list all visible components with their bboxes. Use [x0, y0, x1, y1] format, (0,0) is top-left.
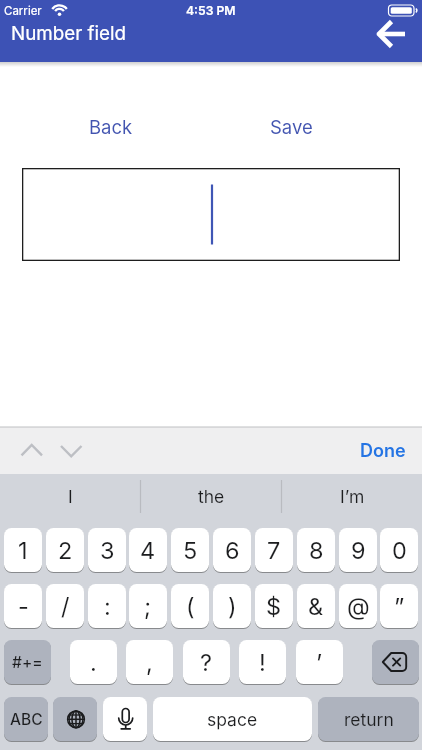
staticText: ABC [10, 710, 43, 729]
button[interactable]: I’m [282, 474, 422, 519]
staticText: #+= [12, 653, 43, 672]
button[interactable]: 4 [129, 528, 167, 572]
staticText: Back [89, 116, 133, 138]
staticText: 4 [140, 536, 156, 564]
staticText: . [90, 648, 97, 676]
button[interactable]: ? [183, 640, 230, 684]
staticText: ! [259, 648, 266, 676]
staticText: Number field [11, 22, 127, 45]
staticText: 8 [309, 536, 324, 564]
staticText: the [198, 486, 225, 507]
button[interactable]: ( [171, 584, 209, 628]
staticText: ) [228, 592, 237, 620]
button[interactable]: ABC [4, 697, 48, 741]
button[interactable] [22, 168, 400, 261]
button[interactable]: / [46, 584, 84, 628]
button[interactable]: @ [339, 584, 377, 628]
button[interactable]: 8 [297, 528, 335, 572]
button[interactable]: Done [352, 432, 414, 469]
staticText: 4:53 PM [186, 3, 236, 18]
button[interactable]: 6 [213, 528, 251, 572]
button[interactable] [368, 12, 416, 56]
button[interactable]: I [0, 474, 140, 519]
staticText: 0 [392, 536, 407, 564]
button[interactable]: 1 [4, 528, 42, 572]
button[interactable]: ; [129, 584, 167, 628]
button[interactable] [53, 697, 97, 741]
button[interactable]: Back [60, 108, 162, 146]
staticText: 7 [267, 536, 281, 564]
staticText: 2 [58, 536, 73, 564]
staticText: 3 [100, 536, 115, 564]
staticText: space [207, 709, 258, 730]
staticText: @ [347, 592, 370, 620]
staticText: , [146, 648, 153, 676]
button[interactable] [372, 640, 419, 684]
staticText: ” [394, 592, 405, 620]
staticText: / [61, 592, 70, 620]
button[interactable]: space [153, 697, 312, 741]
button[interactable]: & [297, 584, 335, 628]
button[interactable]: #+= [4, 640, 51, 684]
staticText: ? [200, 648, 213, 676]
staticText: I’m [340, 486, 365, 507]
button[interactable]: ) [213, 584, 251, 628]
button[interactable]: ’ [296, 640, 343, 684]
staticText: 5 [183, 536, 198, 564]
staticText: ’ [316, 648, 323, 676]
staticText: Done [360, 440, 406, 462]
button[interactable]: $ [255, 584, 293, 628]
staticText: ; [144, 592, 152, 620]
button[interactable]: Save [240, 108, 342, 146]
staticText: - [18, 592, 29, 620]
button[interactable]: - [4, 584, 42, 628]
staticText: 6 [225, 536, 240, 564]
staticText: Carrier [4, 4, 42, 18]
button[interactable]: 0 [380, 528, 418, 572]
button[interactable]: 3 [88, 528, 126, 572]
button[interactable]: the [141, 474, 281, 519]
button[interactable]: ! [239, 640, 286, 684]
staticText: ( [186, 592, 195, 620]
button[interactable]: return [318, 697, 419, 741]
staticText: 1 [18, 536, 28, 564]
button[interactable]: 9 [339, 528, 377, 572]
staticText: return [344, 709, 394, 730]
staticText: $ [266, 592, 282, 620]
button[interactable]: : [88, 584, 126, 628]
staticText: Save [270, 116, 313, 138]
button[interactable]: 2 [46, 528, 84, 572]
button[interactable]: 5 [171, 528, 209, 572]
button[interactable]: 7 [255, 528, 293, 572]
staticText: & [308, 592, 324, 620]
button[interactable]: , [126, 640, 173, 684]
staticText: 9 [351, 536, 366, 564]
staticText: I [68, 486, 73, 507]
button[interactable]: ” [380, 584, 418, 628]
button[interactable]: . [70, 640, 117, 684]
staticText: : [104, 592, 111, 620]
button[interactable] [103, 697, 147, 741]
